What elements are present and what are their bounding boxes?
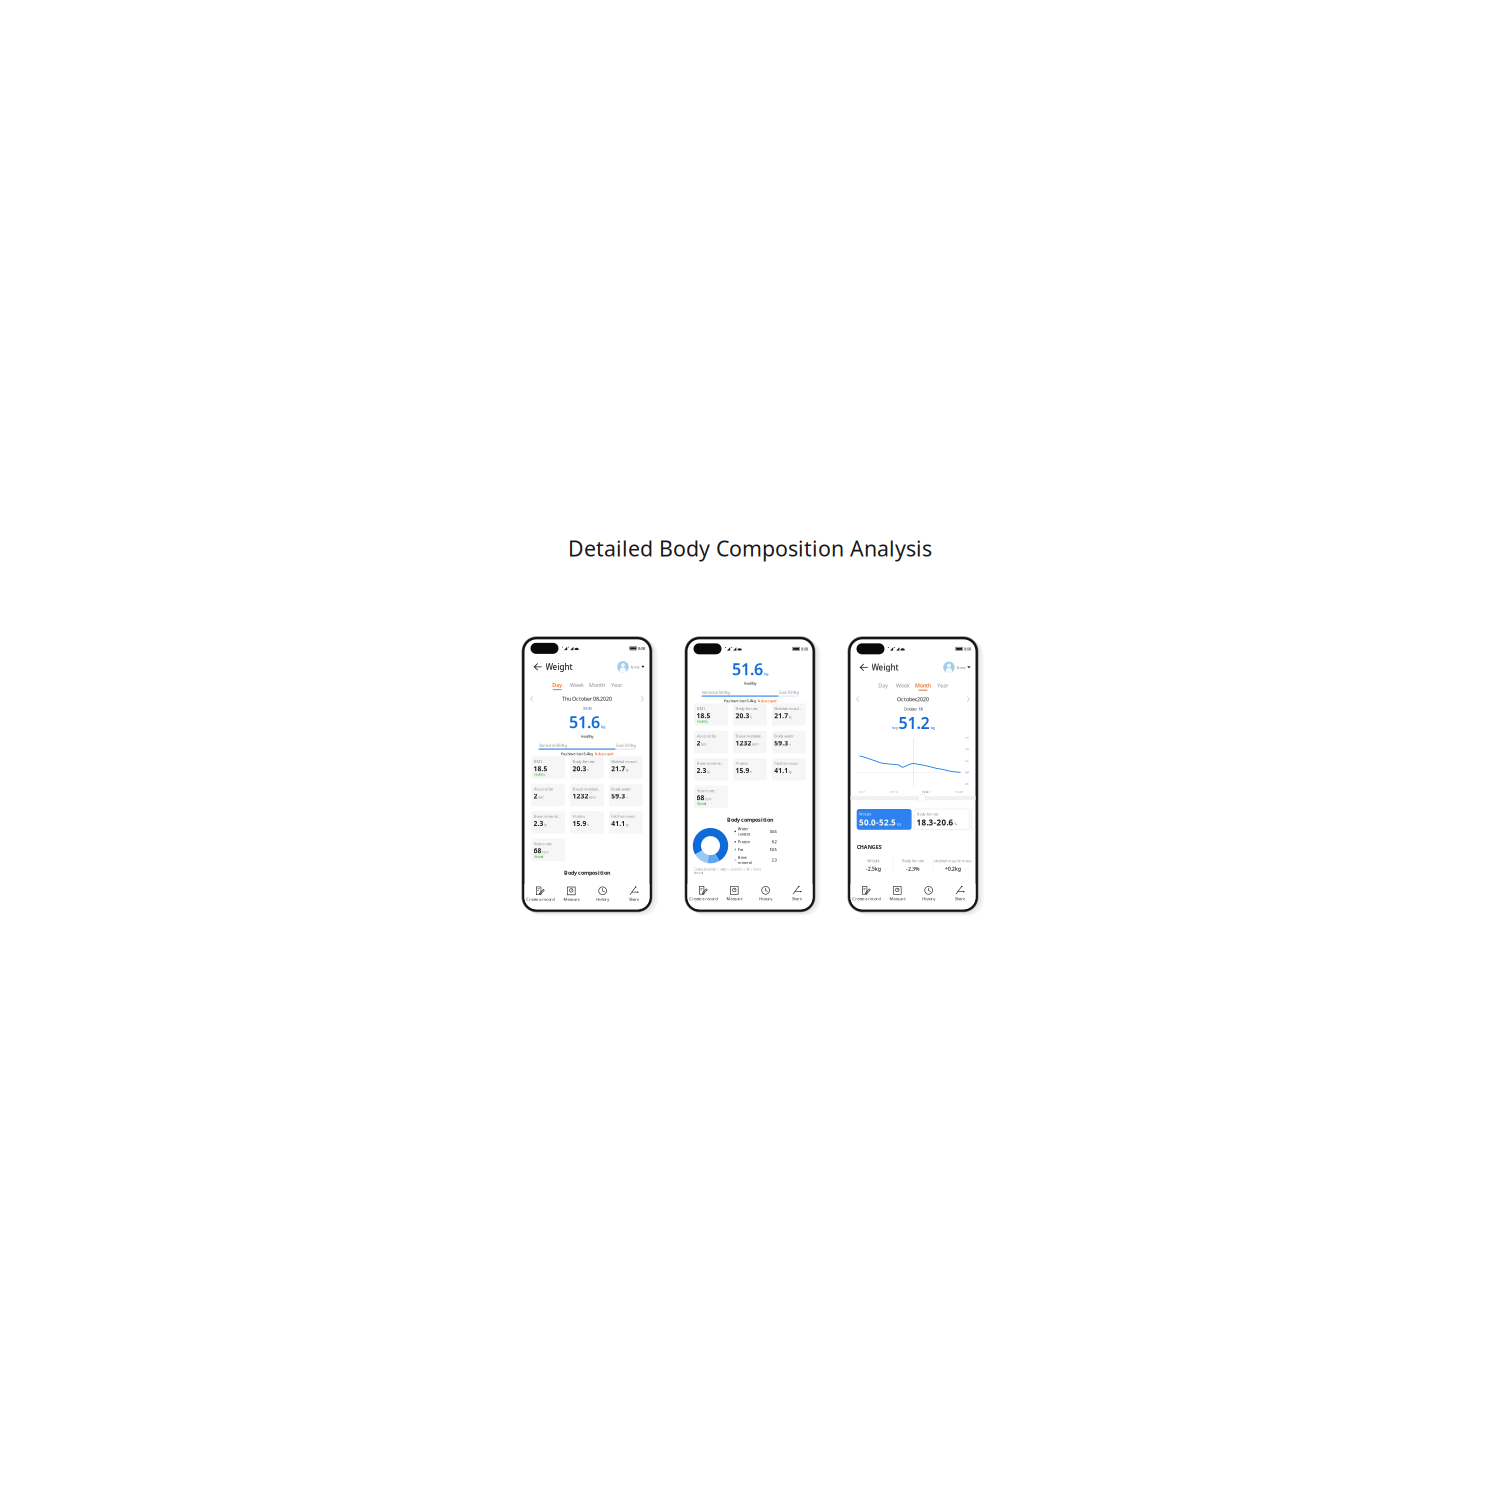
button[interactable]: Day — [873, 682, 893, 691]
button[interactable]: Previous — [856, 696, 859, 702]
button[interactable]: Year — [607, 681, 627, 690]
button[interactable]: Adjust goal — [757, 698, 776, 703]
button[interactable]: Body fat rate — [914, 809, 969, 830]
button[interactable]: Next — [641, 696, 644, 702]
staticText: Healthy — [697, 720, 707, 723]
staticText: 8:08 — [638, 646, 645, 651]
button[interactable]: Share — [618, 884, 649, 910]
staticText: Adjust goal — [757, 698, 776, 703]
staticText: Month — [589, 681, 605, 688]
staticText: Week — [896, 682, 910, 689]
staticText: 54 — [965, 747, 969, 751]
staticText: Skeletal muscl... — [611, 759, 639, 764]
button[interactable]: Measure — [719, 884, 750, 909]
button[interactable]: Next — [967, 696, 970, 702]
staticText: 20.3 — [735, 711, 749, 720]
staticText: Protein — [572, 814, 584, 819]
button[interactable]: Previous — [530, 696, 533, 702]
staticText: Basal metabol... — [572, 786, 600, 791]
button[interactable]: History — [913, 884, 944, 909]
staticText: -2.3% — [906, 865, 920, 872]
staticText: % — [789, 743, 791, 746]
staticText: kg — [626, 768, 629, 772]
staticText: Fat-free mass — [611, 814, 635, 819]
staticText: 50 — [965, 771, 969, 774]
button[interactable]: History — [587, 884, 618, 910]
staticText: kg — [897, 821, 901, 826]
button[interactable]: Week — [893, 682, 913, 691]
staticText: Body fat rate — [916, 811, 938, 816]
staticText: Level — [538, 796, 544, 799]
staticText: History — [596, 896, 609, 902]
button[interactable]: Share — [781, 884, 812, 909]
button[interactable]: Anne — [617, 661, 644, 673]
button[interactable]: Day — [547, 681, 567, 690]
staticText: % — [587, 768, 589, 772]
staticText: 59.3 — [611, 791, 625, 800]
staticText: BMI — [697, 706, 705, 711]
staticText: Basal metabol... — [735, 733, 763, 738]
button[interactable]: Measure — [556, 884, 587, 910]
button[interactable]: Week — [567, 681, 587, 690]
staticText: 20.3 — [572, 764, 586, 773]
staticText: % — [587, 823, 589, 827]
button[interactable]: Create a record — [850, 884, 882, 909]
staticText: Body fat rate — [735, 706, 757, 711]
staticText: Anne — [956, 665, 965, 670]
staticText: Water content — [738, 826, 750, 837]
button[interactable]: History — [750, 884, 781, 909]
staticText: Day — [878, 682, 888, 689]
button[interactable]: Back — [859, 663, 871, 672]
staticText: 2.3 — [771, 857, 776, 862]
staticText: Fat-free mass — [774, 761, 798, 766]
staticText: You have lost 6.4kg — [723, 698, 755, 703]
button[interactable]: Anne — [943, 662, 970, 673]
staticText: Weight — [871, 662, 898, 673]
staticText: avg — [891, 725, 897, 730]
button[interactable]: Month — [913, 682, 933, 691]
staticText: kg — [601, 724, 605, 729]
staticText: bpm — [705, 797, 711, 801]
staticText: Body composition — [564, 869, 610, 876]
staticText: Detailed Body Composition Analysis — [568, 534, 932, 562]
staticText: Anne — [630, 664, 639, 669]
button[interactable]: Weight — [857, 809, 912, 830]
staticText: 10/7 — [858, 790, 865, 793]
staticText: 10.5 — [769, 847, 776, 852]
staticText: kcal/d — [752, 743, 759, 746]
button[interactable]: Month — [587, 681, 607, 690]
button[interactable]: Create a record — [524, 884, 556, 910]
staticText: Bone mineral... — [697, 761, 724, 766]
button[interactable]: Adjust goal — [594, 751, 613, 756]
button[interactable]: Year — [933, 682, 953, 691]
staticText: 2.3 — [697, 766, 707, 775]
staticText: 09:30 — [582, 706, 591, 711]
staticText: Visceral fat — [534, 786, 553, 791]
staticText: Protein — [735, 761, 747, 766]
staticText: Body water — [611, 786, 631, 791]
staticText: Normal — [534, 855, 543, 859]
staticText: 52 — [965, 759, 969, 763]
staticText: Goal 50.0kg — [615, 742, 635, 748]
staticText: % — [626, 796, 628, 799]
staticText: 50.0-52.5 — [859, 817, 896, 828]
staticText: 2 — [534, 791, 538, 800]
staticText: % — [750, 770, 752, 774]
button[interactable]: Share — [944, 884, 975, 909]
button[interactable]: Back — [533, 663, 545, 671]
staticText: 8.2 — [771, 839, 776, 844]
staticText: kg — [544, 823, 547, 827]
staticText: Year — [937, 682, 948, 689]
staticText: 18.5 — [697, 711, 711, 720]
staticText: 8:08 — [801, 646, 808, 651]
staticText: Body water — [774, 733, 794, 738]
staticText: 51.6 — [732, 658, 763, 679]
staticText: 15.9 — [735, 766, 749, 775]
staticText: Heart rate — [534, 841, 552, 846]
button[interactable]: Create a record — [687, 884, 719, 909]
button[interactable]: Measure — [882, 884, 913, 909]
staticText: 33.6 — [769, 829, 776, 834]
staticText: 10/21 — [922, 790, 931, 793]
staticText: Month — [915, 682, 931, 689]
staticText: 41.1 — [774, 766, 788, 775]
